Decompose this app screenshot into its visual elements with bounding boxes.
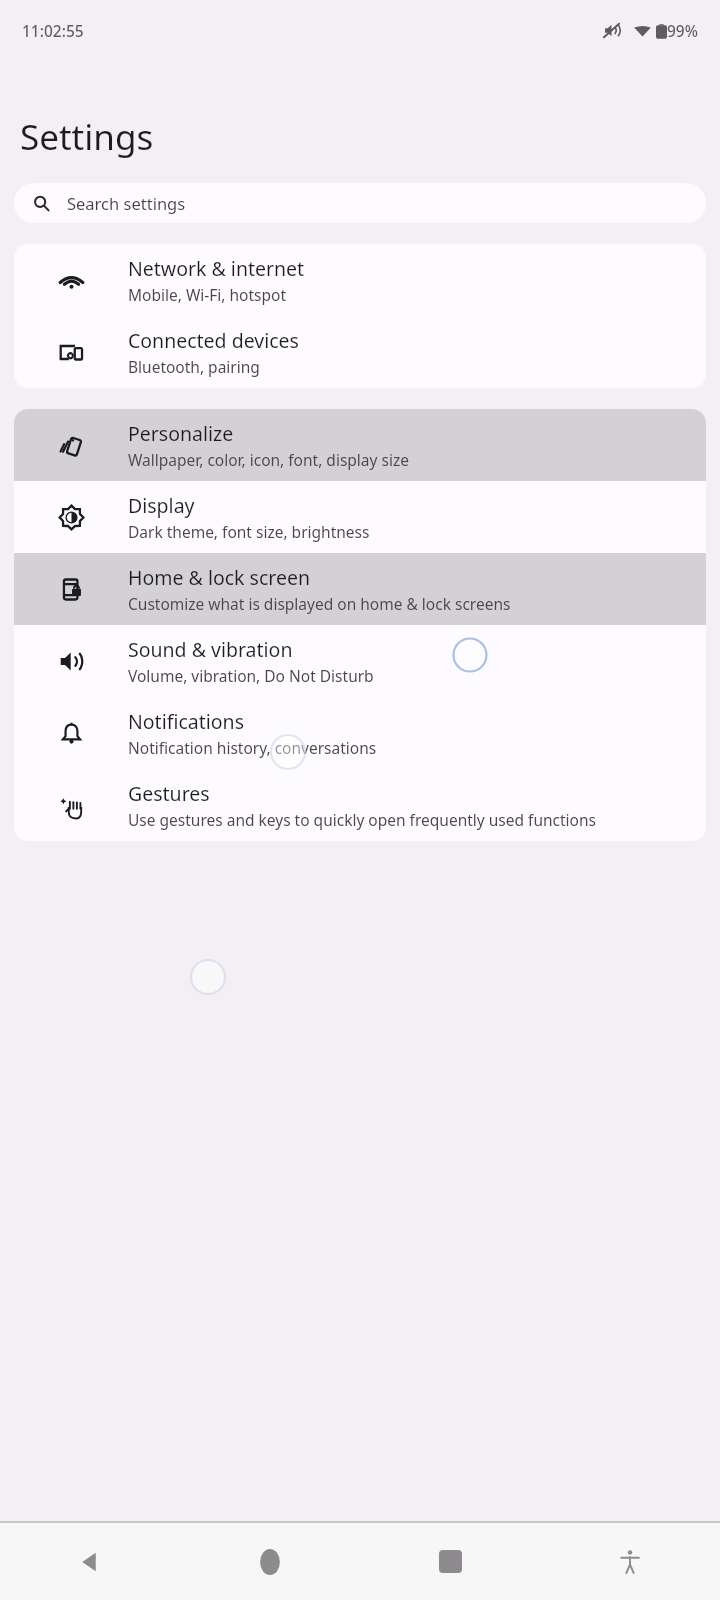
staticText: Use gestures and keys to quickly open fr… — [128, 809, 596, 830]
button[interactable]: Personalize — [14, 409, 706, 481]
staticText: Display — [128, 492, 195, 519]
staticText: Dark theme, font size, brightness — [128, 521, 370, 542]
staticText: Customize what is displayed on home & lo… — [128, 593, 511, 614]
staticText: Wallpaper, color, icon, font, display si… — [128, 449, 409, 470]
staticText: Gestures — [128, 780, 210, 807]
button[interactable]: Back — [0, 1523, 180, 1600]
staticText: Personalize — [128, 420, 234, 447]
button[interactable]: Sound & vibration — [14, 625, 706, 697]
button[interactable]: Search settings — [14, 183, 706, 223]
staticText: Sound & vibration — [128, 636, 293, 663]
staticText: Search settings — [67, 192, 186, 214]
button[interactable]: Connected devices — [14, 316, 706, 388]
staticText: Bluetooth, pairing — [128, 356, 260, 377]
staticText: Connected devices — [128, 327, 299, 354]
button[interactable]: Recent apps — [360, 1523, 540, 1600]
button[interactable]: Home — [180, 1523, 360, 1600]
staticText: Network & internet — [128, 255, 305, 282]
button[interactable]: Gestures — [14, 769, 706, 841]
staticText: 11:02:55 — [22, 20, 84, 41]
button[interactable]: Notifications — [14, 697, 706, 769]
button[interactable]: Home & lock screen — [14, 553, 706, 625]
staticText: Notifications — [128, 708, 244, 735]
staticText: 99% — [667, 20, 698, 41]
staticText: Notification history, conversations — [128, 737, 377, 758]
button[interactable]: Display — [14, 481, 706, 553]
button[interactable]: Network & internet — [14, 244, 706, 316]
staticText: Home & lock screen — [128, 564, 310, 591]
staticText: Mobile, Wi-Fi, hotspot — [128, 284, 287, 305]
staticText: Volume, vibration, Do Not Disturb — [128, 665, 374, 686]
staticText: Settings — [20, 113, 154, 161]
button[interactable]: Accessibility — [540, 1523, 720, 1600]
